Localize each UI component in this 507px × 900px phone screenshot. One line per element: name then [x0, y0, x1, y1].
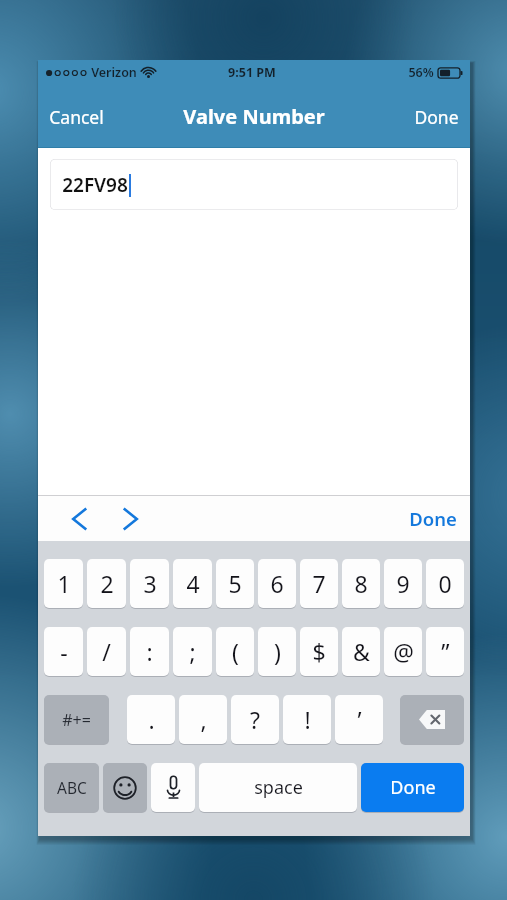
- button[interactable]: 5: [216, 559, 254, 608]
- button[interactable]: .: [127, 695, 175, 744]
- button[interactable]: Done: [361, 763, 464, 812]
- button[interactable]: Done: [396, 498, 470, 539]
- staticText: Done: [409, 506, 457, 531]
- staticText: #+=: [62, 709, 91, 731]
- button[interactable]: Backspace: [400, 695, 464, 744]
- staticText: (: [232, 636, 239, 667]
- staticText: /: [102, 636, 111, 667]
- button[interactable]: ,: [179, 695, 227, 744]
- staticText: Cancel: [49, 105, 104, 129]
- staticText: 2: [100, 568, 114, 599]
- button[interactable]: 1: [44, 559, 83, 608]
- button[interactable]: @: [384, 627, 422, 676]
- button[interactable]: Dictation: [151, 763, 195, 812]
- staticText: @: [393, 636, 414, 667]
- button[interactable]: 8: [342, 559, 380, 608]
- button[interactable]: !: [283, 695, 331, 744]
- staticText: 1: [57, 568, 71, 599]
- button[interactable]: 0: [426, 559, 464, 608]
- staticText: Done: [414, 105, 459, 129]
- staticText: .: [148, 704, 155, 735]
- staticText: ): [274, 636, 281, 667]
- button[interactable]: ’: [335, 695, 383, 744]
- button[interactable]: Cancel: [38, 96, 115, 138]
- button[interactable]: #+=: [44, 695, 109, 744]
- button[interactable]: /: [87, 627, 126, 676]
- button[interactable]: &: [342, 627, 380, 676]
- staticText: 3: [143, 568, 157, 599]
- staticText: ABC: [57, 777, 87, 798]
- button[interactable]: $: [300, 627, 338, 676]
- staticText: 22FV98: [62, 172, 128, 198]
- button[interactable]: 22FV98: [50, 159, 458, 210]
- staticText: ”: [441, 636, 450, 667]
- staticText: ,: [200, 704, 207, 735]
- button[interactable]: 2: [87, 559, 126, 608]
- button[interactable]: 7: [300, 559, 338, 608]
- button[interactable]: 9: [384, 559, 422, 608]
- button[interactable]: 6: [258, 559, 296, 608]
- button[interactable]: (: [216, 627, 254, 676]
- button[interactable]: 3: [130, 559, 169, 608]
- staticText: 9: [396, 568, 410, 599]
- button[interactable]: -: [44, 627, 83, 676]
- button[interactable]: space: [199, 763, 357, 812]
- staticText: !: [304, 704, 311, 735]
- staticText: Done: [390, 775, 436, 800]
- staticText: Valve Number: [183, 103, 325, 130]
- button[interactable]: Done: [403, 96, 470, 138]
- button[interactable]: ): [258, 627, 296, 676]
- staticText: space: [254, 775, 303, 800]
- staticText: ?: [250, 704, 260, 735]
- button[interactable]: Previous field: [64, 501, 95, 537]
- staticText: ’: [357, 704, 362, 735]
- staticText: 6: [270, 568, 284, 599]
- staticText: ;: [189, 636, 196, 667]
- button[interactable]: :: [130, 627, 169, 676]
- staticText: 9:51 PM: [228, 64, 276, 81]
- button[interactable]: ”: [426, 627, 464, 676]
- staticText: 56%: [408, 64, 434, 81]
- staticText: 5: [228, 568, 242, 599]
- button[interactable]: ?: [231, 695, 279, 744]
- staticText: 7: [312, 568, 326, 599]
- button[interactable]: ;: [173, 627, 212, 676]
- staticText: 8: [354, 568, 368, 599]
- staticText: :: [146, 636, 153, 667]
- staticText: -: [60, 636, 68, 667]
- staticText: &: [353, 636, 370, 667]
- button[interactable]: Emoji keyboard: [103, 763, 147, 812]
- button[interactable]: ABC: [44, 763, 99, 812]
- staticText: $: [312, 636, 326, 667]
- staticText: 4: [186, 568, 200, 599]
- button[interactable]: Next field: [115, 501, 146, 537]
- staticText: 0: [438, 568, 452, 599]
- staticText: Verizon: [91, 64, 137, 81]
- button[interactable]: 4: [173, 559, 212, 608]
